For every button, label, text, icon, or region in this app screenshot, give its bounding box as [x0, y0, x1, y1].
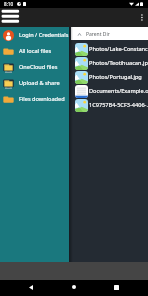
button[interactable]: Documents/Example.odt: [71, 84, 148, 98]
staticText: All local files: [19, 47, 52, 55]
staticText: Upload & share: [19, 79, 60, 87]
button[interactable]: Login / Credentials: [0, 27, 69, 43]
button[interactable]: More options: [137, 9, 148, 26]
button[interactable]: Back: [19, 279, 43, 295]
button[interactable]: Files downloaded: [0, 91, 69, 107]
button[interactable]: Photos/Portugal.jpg: [71, 70, 148, 84]
staticText: Documents/Example.odt: [89, 87, 148, 95]
staticText: OneCloud files: [19, 63, 58, 71]
staticText: Photos/Portugal.jpg: [89, 73, 142, 81]
staticText: Login / Credentials: [19, 31, 69, 39]
staticText: Photos/Teotihuacan.jpg: [89, 59, 148, 67]
button[interactable]: Open navigation drawer: [0, 8, 21, 27]
button[interactable]: Recent apps: [104, 279, 128, 295]
staticText: 1C9757B4-5CF3-4406-...: [89, 101, 148, 109]
button[interactable]: Upload & share: [0, 75, 69, 91]
button[interactable]: OneCloud files: [0, 59, 69, 75]
staticText: 8:10: [4, 1, 14, 7]
staticText: Parent Dir: [86, 31, 110, 38]
staticText: Photos/Lake-Constance.jpg: [89, 45, 148, 53]
button[interactable]: Parent Dir: [71, 27, 148, 40]
button[interactable]: All local files: [0, 43, 69, 59]
staticText: Files downloaded: [19, 95, 65, 103]
button[interactable]: Photos/Teotihuacan.jpg: [71, 56, 148, 70]
button[interactable]: Home: [62, 279, 86, 295]
button[interactable]: Photos/Lake-Constance.jpg: [71, 42, 148, 56]
button[interactable]: 1C9757B4-5CF3-4406-...: [71, 98, 148, 112]
